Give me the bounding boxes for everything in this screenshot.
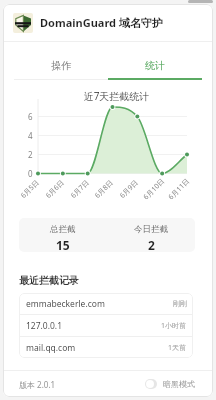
- staticText: 暗黑模式: [163, 379, 195, 389]
- staticText: 6月10日: [141, 176, 168, 202]
- button[interactable]: 暗黑模式开关: [145, 379, 195, 389]
- staticText: 操作: [51, 59, 71, 72]
- staticText: 最近拦截记录: [19, 274, 79, 287]
- button[interactable]: 今日拦截: [107, 218, 195, 252]
- staticText: 6月8日: [93, 177, 116, 201]
- staticText: 总拦截: [50, 224, 76, 235]
- staticText: 127.0.0.1: [26, 320, 63, 332]
- staticText: 6: [28, 111, 33, 122]
- button[interactable]: mail.qq.com: [19, 337, 193, 358]
- staticText: 15: [56, 237, 70, 252]
- staticText: 4: [28, 130, 33, 141]
- staticText: 6月6日: [44, 177, 67, 201]
- staticText: mail.qq.com: [26, 342, 76, 354]
- staticText: 刚刚: [173, 299, 187, 308]
- staticText: DomainGuard 域名守护: [40, 15, 163, 30]
- staticText: emmabeckerle.com: [26, 298, 105, 310]
- staticText: 6月9日: [118, 177, 141, 201]
- staticText: 0: [28, 168, 33, 179]
- staticText: 1天前: [168, 343, 187, 353]
- button[interactable]: 总拦截: [19, 218, 107, 252]
- other: 暗黑模式开关: [145, 379, 157, 389]
- staticText: 2: [28, 149, 33, 160]
- staticText: 版本 2.0.1: [19, 379, 56, 390]
- button[interactable]: 统计: [108, 42, 202, 80]
- staticText: 近7天拦截统计: [20, 89, 213, 103]
- staticText: 1小时前: [161, 321, 187, 331]
- button[interactable]: emmabeckerle.com: [19, 293, 193, 314]
- button[interactable]: 127.0.0.1: [19, 315, 193, 336]
- staticText: 6月11日: [166, 176, 193, 202]
- staticText: 统计: [145, 59, 165, 72]
- staticText: 2: [148, 237, 155, 252]
- staticText: 6月5日: [19, 177, 42, 201]
- staticText: 今日拦截: [134, 224, 168, 235]
- button[interactable]: 操作: [14, 42, 108, 80]
- staticText: 6月7日: [69, 177, 92, 201]
